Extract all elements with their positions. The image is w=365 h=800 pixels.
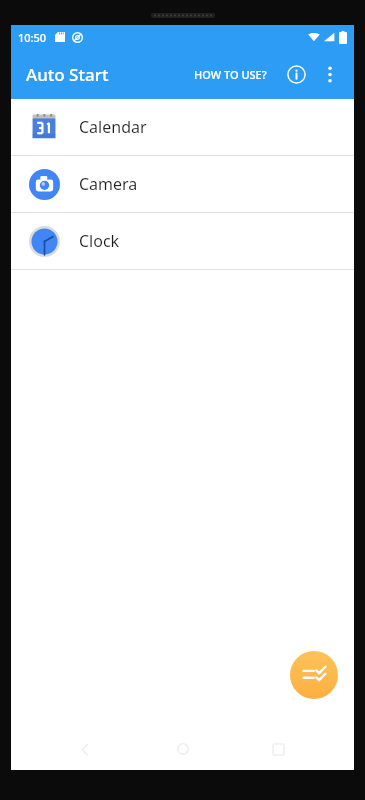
staticText: Calendar <box>79 116 147 138</box>
button[interactable]: Information <box>279 57 313 91</box>
staticText: Camera <box>79 173 138 195</box>
button[interactable]: Clock <box>11 213 354 269</box>
staticText: 10:50 <box>18 30 47 45</box>
button[interactable]: Select all apps <box>290 651 338 699</box>
staticText: HOW TO USE? <box>194 67 267 82</box>
button[interactable]: Camera <box>11 156 354 212</box>
staticText: Auto Start <box>26 63 109 86</box>
staticText: Clock <box>79 230 120 252</box>
button[interactable]: HOW TO USE? <box>190 61 271 88</box>
button[interactable]: Calendar <box>11 99 354 155</box>
button[interactable]: More options <box>313 57 347 91</box>
